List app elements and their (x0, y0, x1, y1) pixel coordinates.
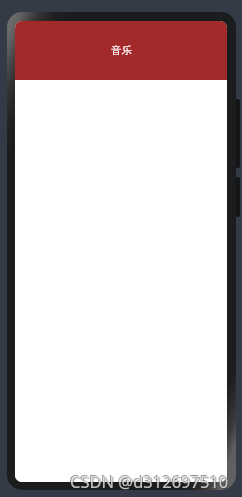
staticText: CSDN @d312697510 (69, 469, 228, 491)
other: Power key (230, 99, 240, 168)
staticText: 音乐 (111, 44, 132, 57)
other: Volume key (230, 177, 240, 217)
staticText: CSDN @d312697510 (71, 471, 230, 493)
button[interactable]: 音乐 (15, 21, 227, 80)
staticText: CSDN @d312697510 (70, 470, 229, 492)
